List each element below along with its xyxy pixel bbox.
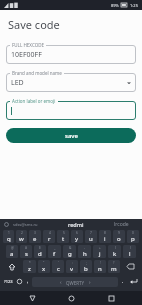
staticText: j [99,250,101,258]
staticText: redmi [68,221,84,228]
staticText: h [83,250,87,258]
button[interactable]: , [24,275,31,288]
staticText: 6 [76,231,78,235]
staticText: b [84,265,88,273]
button[interactable]: _ [48,245,61,258]
button[interactable]: ' [52,260,64,273]
staticText: ? [113,261,115,265]
staticText: & [69,246,72,250]
staticText: › [89,279,91,286]
button[interactable]: ( [108,245,121,258]
staticText: Action label or emoji [12,98,56,104]
staticText: i [104,235,106,243]
staticText: sdss@sms.ru [13,222,38,227]
staticText: 0 [132,231,134,235]
staticText: - [84,246,86,250]
button[interactable]: $ [34,245,46,258]
button[interactable]: 9 [113,230,125,243]
staticText: . [122,278,124,285]
staticText: 1:25 [130,3,138,8]
button[interactable]: save [6,128,136,143]
button[interactable]: 6 [71,230,83,243]
button[interactable]: * [23,260,36,273]
button[interactable]: 4 [43,230,55,243]
other: Settings [4,222,9,227]
staticText: 10EF00FF [11,50,42,60]
staticText: w [19,235,24,243]
button[interactable]: Home [63,291,79,305]
staticText: Save code [8,17,60,32]
staticText: FULL HEXCODE [12,42,44,48]
staticText: p [131,235,135,243]
button[interactable]: ! [94,260,106,273]
button[interactable]: ? [108,260,120,273]
staticText: ?123 [4,279,13,284]
staticText: z [28,265,31,273]
button[interactable]: 2 [16,230,27,243]
button[interactable]: Shift [2,260,22,273]
staticText: ! [100,261,101,265]
staticText: : [72,261,73,265]
staticText: 2 [21,231,23,235]
button[interactable]: . [119,275,126,288]
button[interactable]: : [66,260,78,273]
button[interactable]: 7 [85,230,97,243]
button[interactable]: - [78,245,91,258]
staticText: 7 [90,231,92,235]
button[interactable] [6,101,136,120]
staticText: 4 [49,231,51,235]
button[interactable]: # [20,245,32,258]
staticText: # [25,246,28,250]
staticText: k [113,250,117,258]
staticText: ; [86,261,87,265]
staticText: x [42,265,46,273]
staticText: lrcode [114,221,129,228]
staticText: e [33,235,37,243]
staticText: s [25,250,28,258]
button[interactable]: 5 [57,230,69,243]
button[interactable]: ) [123,245,136,258]
button[interactable]: 1 [3,230,14,243]
staticText: , [27,278,29,285]
button[interactable]: 10EF00FF [6,45,136,64]
button[interactable]: + [93,245,106,258]
button[interactable]: Enter [126,275,140,288]
button[interactable]: 8 [99,230,111,243]
button[interactable]: @ [6,245,18,258]
staticText: t [62,235,65,243]
button[interactable]: Recents [103,291,119,305]
staticText: 5 [63,231,65,235]
staticText: f [53,250,56,258]
button[interactable]: & [63,245,76,258]
staticText: 1 [8,231,10,235]
staticText: + [99,246,101,250]
staticText: y [75,235,79,243]
button[interactable]: Emoji [14,275,24,288]
staticText: 9 [118,231,120,235]
staticText: c [57,265,60,273]
staticText: " [43,261,45,265]
button[interactable]: LED [6,73,136,92]
button[interactable]: ‹ [32,277,118,287]
button[interactable]: 3 [29,230,41,243]
staticText: 3 [34,231,36,235]
staticText: 89% [111,3,119,8]
staticText: QWERTY [66,280,85,286]
staticText: @ [11,246,14,250]
button[interactable]: Backspace [121,260,140,273]
staticText: 8 [104,231,106,235]
button[interactable]: ; [80,260,92,273]
button[interactable]: Back [24,291,40,305]
button[interactable]: ?123 [2,275,14,288]
button[interactable]: 0 [127,230,139,243]
staticText: o [117,235,121,243]
staticText: * [29,261,31,265]
staticText: ' [58,261,59,265]
staticText: d [38,250,42,258]
staticText: ( [115,246,116,250]
button[interactable]: " [38,260,50,273]
staticText: r [48,235,51,243]
staticText: g [68,250,72,258]
staticText: LED [11,78,24,88]
staticText: u [89,235,93,243]
